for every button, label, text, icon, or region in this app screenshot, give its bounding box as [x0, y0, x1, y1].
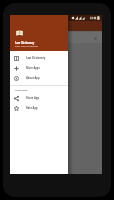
button[interactable]: More Apps — [10, 63, 68, 73]
staticText: About App — [26, 76, 40, 80]
button[interactable]: About App — [10, 73, 68, 83]
staticText: Law Dictionary — [26, 56, 46, 60]
button[interactable]: Rate App — [10, 103, 68, 113]
staticText: Rate App — [26, 106, 38, 110]
staticText: Share App — [26, 96, 40, 100]
button[interactable]: Law Dictionary — [10, 53, 68, 63]
other: Close ad — [94, 37, 97, 40]
staticText: Application — [15, 89, 28, 92]
staticText: More Apps — [26, 66, 40, 70]
button[interactable]: Law Dictionary — [10, 15, 68, 51]
staticText: Best Law Dictionary — [15, 44, 39, 47]
button[interactable]: Share App — [10, 93, 68, 103]
staticText: Law Dictionary — [15, 41, 35, 45]
